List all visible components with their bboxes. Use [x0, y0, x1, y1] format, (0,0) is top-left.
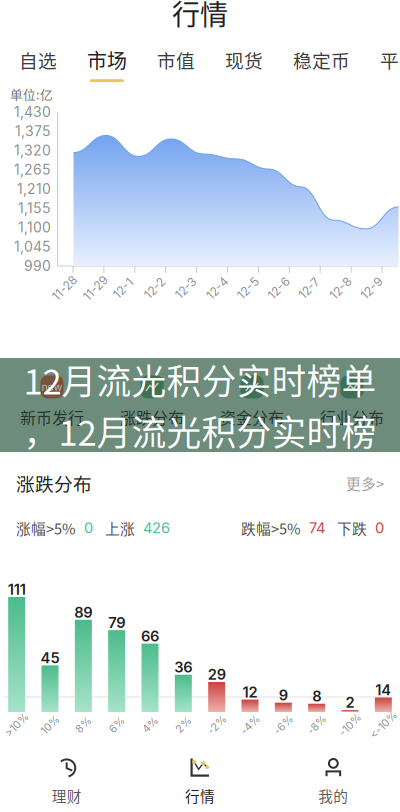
staticText: 涨幅>5% — [16, 517, 76, 539]
staticText: 29 — [208, 666, 226, 683]
staticText: 10% — [39, 718, 60, 731]
staticText: 理财 — [52, 785, 82, 806]
staticText: 79 — [108, 614, 125, 631]
staticText: 11-28 — [50, 281, 79, 295]
staticText: 89 — [74, 603, 92, 621]
staticText: 990 — [24, 257, 51, 274]
staticText: >10% — [3, 718, 31, 731]
staticText: 12-7 — [297, 281, 321, 295]
button[interactable]: 市场 — [72, 45, 142, 83]
staticText: -6% — [272, 718, 294, 731]
staticText: 6% — [108, 718, 125, 731]
staticText: 1,210 — [17, 180, 51, 197]
staticText: -8% — [306, 718, 328, 731]
staticText: 111 — [8, 581, 26, 598]
button[interactable]: 我的 — [267, 757, 400, 806]
staticText: 12-5 — [235, 281, 260, 295]
staticText: 1,265 — [14, 161, 51, 178]
staticText: 74 — [301, 519, 325, 537]
button[interactable]: 理财 — [0, 757, 133, 806]
staticText: 8 — [312, 687, 321, 705]
staticText: 8% — [75, 718, 92, 731]
button[interactable]: 稳定币 — [278, 46, 365, 82]
staticText: 下跌 — [325, 517, 367, 539]
staticText: 资金分布 — [220, 405, 284, 429]
button[interactable]: 涨跌分布 — [107, 376, 197, 428]
staticText: 1,430 — [14, 103, 51, 120]
staticText: 现货 — [225, 46, 263, 73]
staticText: 跌幅>5% — [241, 517, 301, 539]
staticText: 12-6 — [266, 281, 291, 295]
staticText: 0 — [76, 519, 93, 537]
staticText: 2 — [345, 694, 354, 711]
staticText: 上涨 — [93, 517, 135, 539]
staticText: 更多> — [346, 472, 384, 494]
staticText: 0 — [367, 519, 384, 537]
staticText: 12-9 — [359, 281, 384, 295]
button[interactable]: 现货 — [210, 46, 278, 82]
staticText: 12月流光积分实时榜单 — [23, 354, 376, 404]
staticText: 自选 — [19, 46, 57, 73]
staticText: -10% — [337, 718, 363, 731]
staticText: 12-8 — [328, 281, 353, 295]
staticText: 66 — [141, 627, 159, 645]
staticText: 45 — [40, 649, 59, 667]
staticText: 市值 — [157, 46, 195, 73]
staticText: 我的 — [318, 785, 348, 806]
staticText: ，12月流光积分实时榜 — [23, 405, 376, 456]
button[interactable]: 行业分布 — [307, 376, 397, 428]
staticText: 12-1 — [112, 281, 135, 295]
staticText: 1,100 — [18, 219, 51, 236]
staticText: 11-29 — [81, 281, 110, 295]
button[interactable]: 资金分布 — [207, 376, 297, 428]
button[interactable]: new — [7, 376, 97, 428]
staticText: 1,375 — [15, 123, 51, 140]
staticText: 稳定币 — [293, 46, 350, 73]
button[interactable]: 自选 — [4, 46, 72, 82]
staticText: 行情 — [172, 0, 228, 33]
staticText: 12-2 — [143, 281, 167, 295]
staticText: 1,045 — [14, 238, 51, 255]
staticText: 426 — [135, 519, 170, 537]
staticText: 12-3 — [174, 281, 198, 295]
staticText: 平台币 — [380, 46, 400, 73]
staticText: 新币发行 — [20, 405, 84, 429]
button[interactable]: 市值 — [142, 46, 210, 82]
staticText: 涨跌分布 — [16, 469, 92, 496]
button[interactable]: 更多> — [346, 472, 384, 494]
staticText: 市场 — [87, 45, 127, 74]
staticText: 9 — [279, 686, 288, 704]
staticText: 涨跌分布 — [120, 405, 184, 429]
staticText: new — [41, 380, 62, 393]
staticText: 12-4 — [204, 281, 230, 295]
staticText: 4% — [141, 718, 158, 731]
staticText: 行情 — [185, 785, 215, 806]
staticText: 1,320 — [14, 142, 51, 159]
staticText: <-10% — [367, 718, 400, 731]
staticText: 12 — [242, 683, 257, 701]
staticText: 36 — [174, 658, 192, 676]
staticText: 2% — [175, 718, 192, 731]
staticText: 1,155 — [18, 200, 51, 217]
staticText: 单位:亿 — [10, 85, 53, 103]
staticText: -2% — [206, 718, 228, 731]
staticText: 14 — [375, 681, 391, 699]
button[interactable]: 行情 — [133, 757, 267, 806]
staticText: -4% — [239, 718, 261, 731]
staticText: 行业分布 — [320, 405, 384, 429]
button[interactable]: 平台币 — [365, 46, 400, 82]
